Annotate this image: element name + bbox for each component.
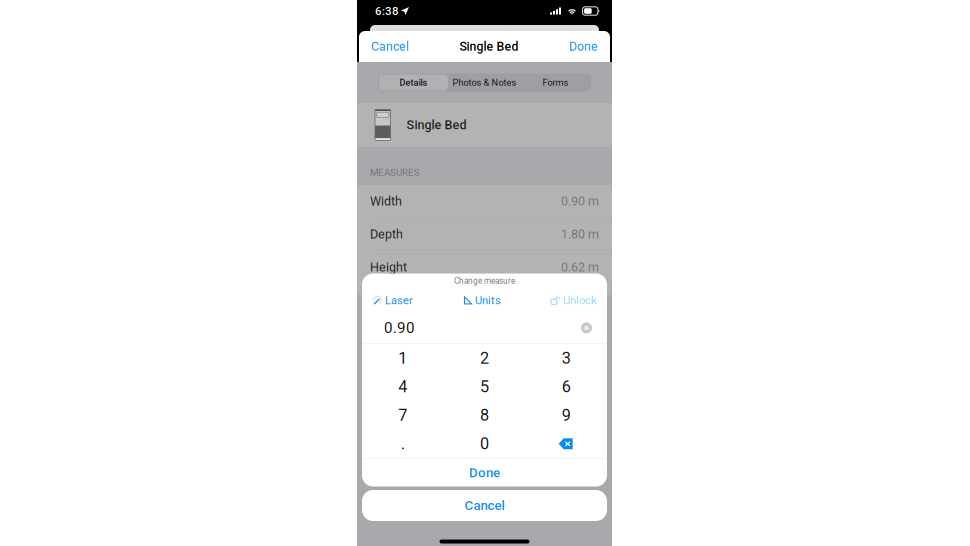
button[interactable]: Cancel — [362, 490, 607, 521]
button[interactable]: 0 — [444, 429, 525, 458]
button[interactable]: 2 — [444, 344, 525, 372]
button[interactable]: Width — [357, 185, 612, 218]
button[interactable]: 6 — [525, 372, 607, 401]
staticText: 1 — [398, 349, 407, 367]
button[interactable]: 3 — [525, 344, 607, 372]
button[interactable]: Cancel — [368, 34, 412, 58]
staticText: 0.62 m — [561, 260, 599, 274]
button[interactable]: Photos & Notes — [449, 73, 520, 91]
button[interactable]: Units — [463, 288, 501, 312]
staticText: Details — [399, 77, 427, 88]
staticText: Cancel — [371, 39, 409, 53]
staticText: Forms — [542, 77, 568, 88]
button[interactable]: Delete — [525, 429, 607, 458]
button[interactable]: Unlock — [551, 288, 597, 312]
staticText: 0.90 — [384, 319, 415, 337]
staticText: 4 — [398, 377, 407, 396]
button[interactable]: Details — [378, 73, 449, 91]
staticText: Single Bed — [407, 118, 467, 132]
button[interactable]: 4 — [362, 372, 444, 401]
button[interactable]: Laser — [373, 288, 413, 312]
button[interactable]: 9 — [525, 401, 607, 429]
button[interactable]: Height — [357, 251, 612, 284]
staticText: MEASURES — [370, 167, 420, 178]
staticText: 0 — [480, 434, 489, 453]
staticText: 8 — [480, 406, 489, 424]
button[interactable]: 8 — [444, 401, 525, 429]
staticText: Laser — [385, 294, 413, 307]
button[interactable]: Done — [362, 459, 607, 487]
button[interactable]: Depth — [357, 218, 612, 251]
staticText: Change measure — [454, 276, 515, 286]
staticText: Unlock — [563, 294, 597, 307]
staticText: 1.80 m — [561, 227, 599, 241]
button[interactable]: Forms — [520, 73, 591, 91]
button[interactable]: 7 — [362, 401, 444, 429]
staticText: Width — [370, 194, 402, 208]
staticText: 7 — [398, 406, 407, 424]
staticText: 6:38 — [375, 4, 399, 17]
staticText: 5 — [480, 377, 489, 396]
staticText: Done — [569, 39, 598, 53]
staticText: . — [401, 434, 405, 453]
staticText: Height — [370, 260, 407, 274]
staticText: Cancel — [464, 498, 504, 513]
staticText: Units — [475, 294, 501, 307]
staticText: Done — [469, 465, 500, 480]
staticText: 9 — [562, 406, 571, 424]
staticText: 2 — [480, 349, 489, 367]
button[interactable]: Clear — [581, 322, 592, 333]
staticText: Photos & Notes — [452, 77, 516, 88]
button[interactable]: . — [362, 429, 444, 458]
staticText: 6 — [562, 377, 571, 396]
button[interactable]: Done — [566, 34, 601, 58]
staticText: Depth — [370, 227, 403, 241]
staticText: 0.90 m — [561, 194, 599, 208]
staticText: 3 — [562, 349, 571, 367]
staticText: Single Bed — [459, 39, 518, 53]
button[interactable]: 1 — [362, 344, 444, 372]
button[interactable]: 5 — [444, 372, 525, 401]
